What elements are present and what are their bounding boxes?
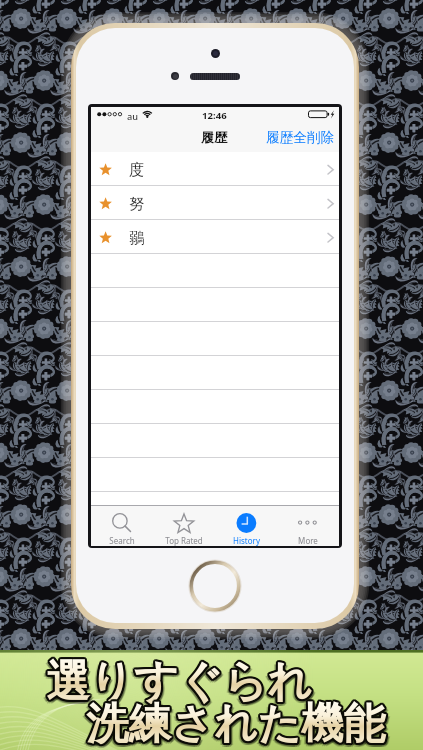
- button[interactable]: Search: [91, 506, 153, 546]
- staticText: 選りすぐられ: [50, 656, 317, 711]
- staticText: 選りすぐられ: [45, 652, 312, 707]
- staticText: 選りすぐられ: [48, 655, 315, 710]
- staticText: 洗練された機能: [85, 695, 385, 748]
- button[interactable]: History: [215, 506, 277, 546]
- staticText: 選りすぐられ: [45, 656, 312, 711]
- staticText: 洗練された機能: [84, 701, 384, 750]
- staticText: 洗練された機能: [84, 696, 384, 749]
- staticText: 履歴: [201, 129, 227, 145]
- staticText: 洗練された機能: [85, 698, 385, 750]
- staticText: 選りすぐられ: [47, 652, 314, 707]
- button[interactable]: 鶸: [91, 220, 339, 253]
- staticText: 洗練された機能: [83, 699, 383, 750]
- staticText: 洗練された機能: [87, 698, 387, 750]
- staticText: 選りすぐられ: [47, 653, 314, 708]
- staticText: 選りすぐられ: [49, 656, 316, 711]
- staticText: 選りすぐられ: [48, 654, 315, 709]
- staticText: 洗練された機能: [88, 701, 388, 750]
- staticText: 洗練された機能: [88, 696, 388, 749]
- staticText: 12:46: [202, 109, 227, 122]
- staticText: 選りすぐられ: [45, 655, 312, 710]
- staticText: 選りすぐられ: [48, 653, 315, 708]
- staticText: 洗練された機能: [87, 695, 387, 748]
- staticText: 選りすぐられ: [44, 653, 311, 708]
- staticText: 選りすぐられ: [42, 656, 309, 711]
- staticText: 洗練された機能: [90, 699, 390, 750]
- button[interactable]: 努: [91, 186, 339, 219]
- staticText: 努: [129, 194, 145, 214]
- staticText: 選りすぐられ: [44, 654, 311, 709]
- staticText: 洗練された機能: [82, 699, 382, 750]
- staticText: 鶸: [129, 228, 145, 248]
- staticText: More: [298, 535, 318, 546]
- staticText: 洗練された機能: [87, 699, 387, 750]
- staticText: 履歴全削除: [266, 129, 334, 146]
- staticText: History: [233, 535, 260, 546]
- staticText: 洗練された機能: [89, 700, 389, 750]
- staticText: 洗練された機能: [86, 695, 386, 748]
- staticText: 選りすぐられ: [46, 654, 313, 709]
- staticText: Top Rated: [165, 535, 203, 546]
- staticText: 洗練された機能: [89, 699, 389, 750]
- staticText: 選りすぐられ: [44, 655, 311, 710]
- staticText: 洗練された機能: [85, 696, 385, 749]
- staticText: 選りすぐられ: [48, 658, 315, 713]
- staticText: 洗練された機能: [84, 697, 384, 750]
- button[interactable]: 履歴全削除: [258, 127, 339, 148]
- staticText: 選りすぐられ: [46, 652, 313, 707]
- button[interactable]: 度: [91, 152, 339, 185]
- button[interactable]: Top Rated: [153, 506, 215, 546]
- staticText: 選りすぐられ: [44, 658, 311, 713]
- staticText: 洗練された機能: [85, 699, 385, 750]
- staticText: 選りすぐられ: [47, 656, 314, 711]
- staticText: 選りすぐられ: [47, 655, 314, 710]
- staticText: 洗練された機能: [87, 696, 387, 749]
- staticText: 洗練された機能: [88, 698, 388, 750]
- button[interactable]: More: [277, 506, 339, 546]
- staticText: 選りすぐられ: [45, 653, 312, 708]
- staticText: 洗練された機能: [86, 699, 386, 750]
- staticText: 選りすぐられ: [43, 656, 310, 711]
- staticText: 選りすぐられ: [49, 657, 316, 712]
- staticText: 洗練された機能: [86, 697, 386, 750]
- staticText: 洗練された機能: [86, 701, 386, 750]
- staticText: 洗練された機能: [84, 698, 384, 750]
- staticText: Search: [109, 535, 135, 546]
- staticText: 選りすぐられ: [46, 656, 313, 711]
- staticText: 洗練された機能: [88, 697, 388, 750]
- staticText: 度: [129, 160, 145, 180]
- staticText: 選りすぐられ: [46, 658, 313, 713]
- staticText: au: [127, 110, 139, 123]
